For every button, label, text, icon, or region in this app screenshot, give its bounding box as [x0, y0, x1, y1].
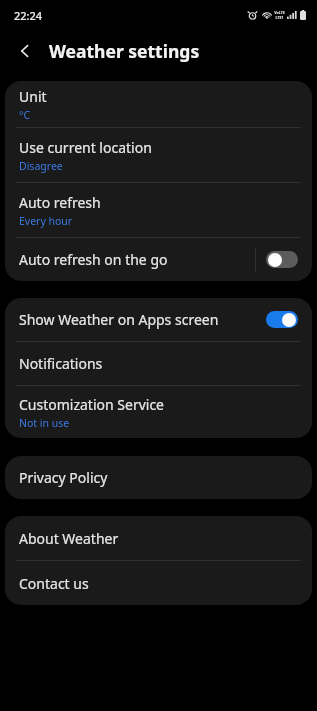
staticText: LTE1	[275, 15, 284, 20]
staticText: Show Weather on Apps screen	[19, 310, 266, 329]
staticText: 22:24	[14, 8, 43, 23]
staticText: Privacy Policy	[19, 468, 108, 487]
button[interactable]	[266, 251, 298, 268]
other: Show Weather on Apps screen	[266, 311, 298, 328]
button[interactable]: Privacy Policy	[5, 456, 312, 499]
staticText: Unit	[19, 87, 47, 106]
button[interactable]: Unit	[5, 81, 312, 127]
button[interactable]: Use current location	[5, 128, 312, 182]
staticText: Every hour	[19, 214, 73, 228]
button[interactable]: Auto refresh on the go	[5, 238, 312, 281]
staticText: Disagree	[19, 159, 63, 173]
staticText: °C	[19, 108, 31, 122]
other: Auto refresh on the go	[266, 251, 298, 268]
staticText: About Weather	[19, 529, 119, 548]
staticText: Weather settings	[49, 39, 200, 63]
staticText: Auto refresh on the go	[19, 250, 255, 269]
staticText: Auto refresh	[19, 193, 101, 212]
button[interactable]: Auto refresh	[5, 183, 312, 237]
button[interactable]: Contact us	[5, 561, 312, 605]
staticText: Contact us	[19, 574, 89, 593]
staticText: Customization Service	[19, 395, 164, 414]
staticText: Use current location	[19, 138, 152, 157]
button[interactable]: Customization Service	[5, 386, 312, 438]
button[interactable]: Notifications	[5, 342, 312, 385]
button[interactable]: About Weather	[5, 516, 312, 560]
staticText: VoLTE	[274, 10, 285, 15]
button[interactable]: Show Weather on Apps screen	[5, 298, 312, 341]
staticText: Not in use	[19, 416, 70, 430]
button[interactable]	[266, 311, 298, 328]
button[interactable]: Back	[11, 37, 39, 65]
staticText: Notifications	[19, 354, 103, 373]
